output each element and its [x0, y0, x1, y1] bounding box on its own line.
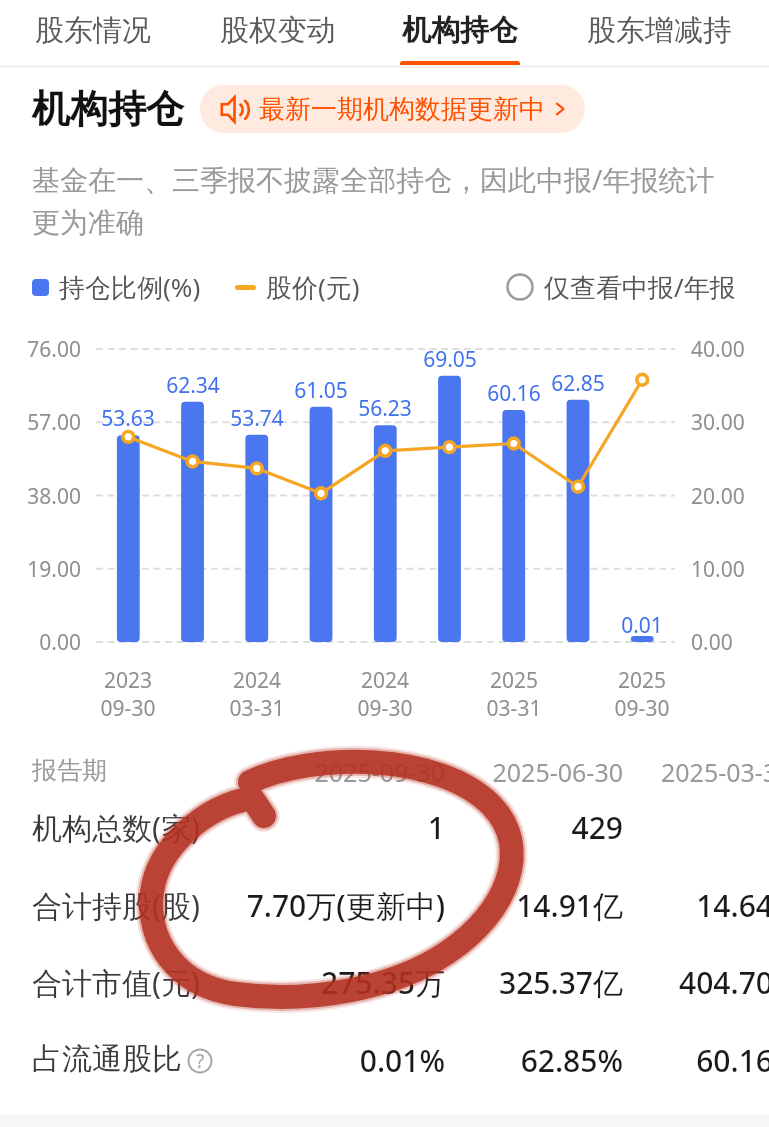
- staticText: 53.63: [88, 404, 168, 433]
- staticText: 14.64: [473, 885, 769, 926]
- staticText: 62.85%: [323, 1040, 623, 1081]
- staticText: 325.37亿: [323, 962, 623, 1003]
- staticText: 股权变动: [220, 12, 336, 49]
- staticText: 404.70: [473, 962, 769, 1003]
- staticText: 最新一期机构数据更新中: [259, 93, 545, 126]
- staticText: 0.01: [602, 611, 682, 640]
- staticText: 仅查看中报/年报: [544, 269, 736, 305]
- staticText: 60.16: [473, 1040, 769, 1081]
- staticText: 机构持仓: [402, 12, 518, 49]
- staticText: 机构总数(家): [32, 807, 200, 848]
- staticText: 10.00: [691, 555, 745, 584]
- staticText: 股价(元): [266, 269, 360, 305]
- staticText: 0.00: [691, 628, 733, 657]
- button[interactable]: [0, 944, 769, 1022]
- staticText: 76.00: [0, 335, 81, 364]
- staticText: ?: [196, 1048, 205, 1074]
- staticText: 2025 03-31: [469, 666, 559, 722]
- button[interactable]: 仅查看中报/年报: [506, 269, 736, 305]
- staticText: 2025-09-30: [185, 755, 445, 789]
- staticText: 56.23: [345, 394, 425, 423]
- staticText: 38.00: [0, 482, 81, 511]
- staticText: 1: [145, 807, 445, 848]
- staticText: 报告期: [32, 755, 107, 786]
- staticText: 62.34: [153, 371, 233, 400]
- button[interactable]: 股权变动: [186, 0, 370, 68]
- staticText: 2024 09-30: [340, 666, 430, 722]
- staticText: 股东情况: [35, 12, 151, 49]
- staticText: 429: [323, 807, 623, 848]
- staticText: 2025-06-30: [363, 755, 623, 789]
- staticText: 0.00: [0, 628, 81, 657]
- staticText: 69.05: [410, 345, 490, 374]
- staticText: 占流通股比: [32, 1040, 182, 1078]
- staticText: 61.05: [281, 376, 361, 405]
- staticText: 持仓比例(%): [59, 269, 201, 305]
- staticText: 机构持仓: [32, 85, 184, 133]
- staticText: 40.00: [691, 335, 745, 364]
- staticText: 股东增减持: [587, 12, 732, 49]
- button[interactable]: [0, 867, 769, 945]
- button[interactable]: 说明: [187, 1048, 213, 1074]
- button[interactable]: [0, 789, 769, 867]
- other: 最新数据公告: [219, 94, 250, 125]
- staticText: 7.70万(更新中): [145, 885, 445, 926]
- staticText: 14.91亿: [323, 885, 623, 926]
- staticText: 57.00: [0, 408, 81, 437]
- staticText: 合计市值(元): [32, 962, 200, 1003]
- staticText: 60.16: [474, 379, 554, 408]
- staticText: 275.35万: [145, 962, 445, 1003]
- button[interactable]: 股东增减持: [550, 0, 769, 68]
- staticText: 53.74: [217, 404, 297, 433]
- button[interactable]: 最新数据公告: [200, 85, 585, 133]
- staticText: 2025-03-31: [661, 755, 769, 789]
- staticText: 30.00: [691, 408, 745, 437]
- button[interactable]: 机构持仓: [370, 0, 550, 68]
- staticText: 合计持股(股): [32, 885, 200, 926]
- staticText: 62.85: [538, 369, 618, 398]
- staticText: 0.01%: [145, 1040, 445, 1081]
- staticText: 2023 09-30: [83, 666, 173, 722]
- staticText: 20.00: [691, 482, 745, 511]
- staticText: 2025 09-30: [597, 666, 687, 722]
- button[interactable]: [0, 1022, 769, 1100]
- staticText: 基金在一、三季报不披露全部持仓，因此中报/年报统计更为准确: [32, 160, 732, 241]
- button[interactable]: 股东情况: [0, 0, 186, 68]
- staticText: 2024 03-31: [212, 666, 302, 722]
- staticText: 19.00: [0, 555, 81, 584]
